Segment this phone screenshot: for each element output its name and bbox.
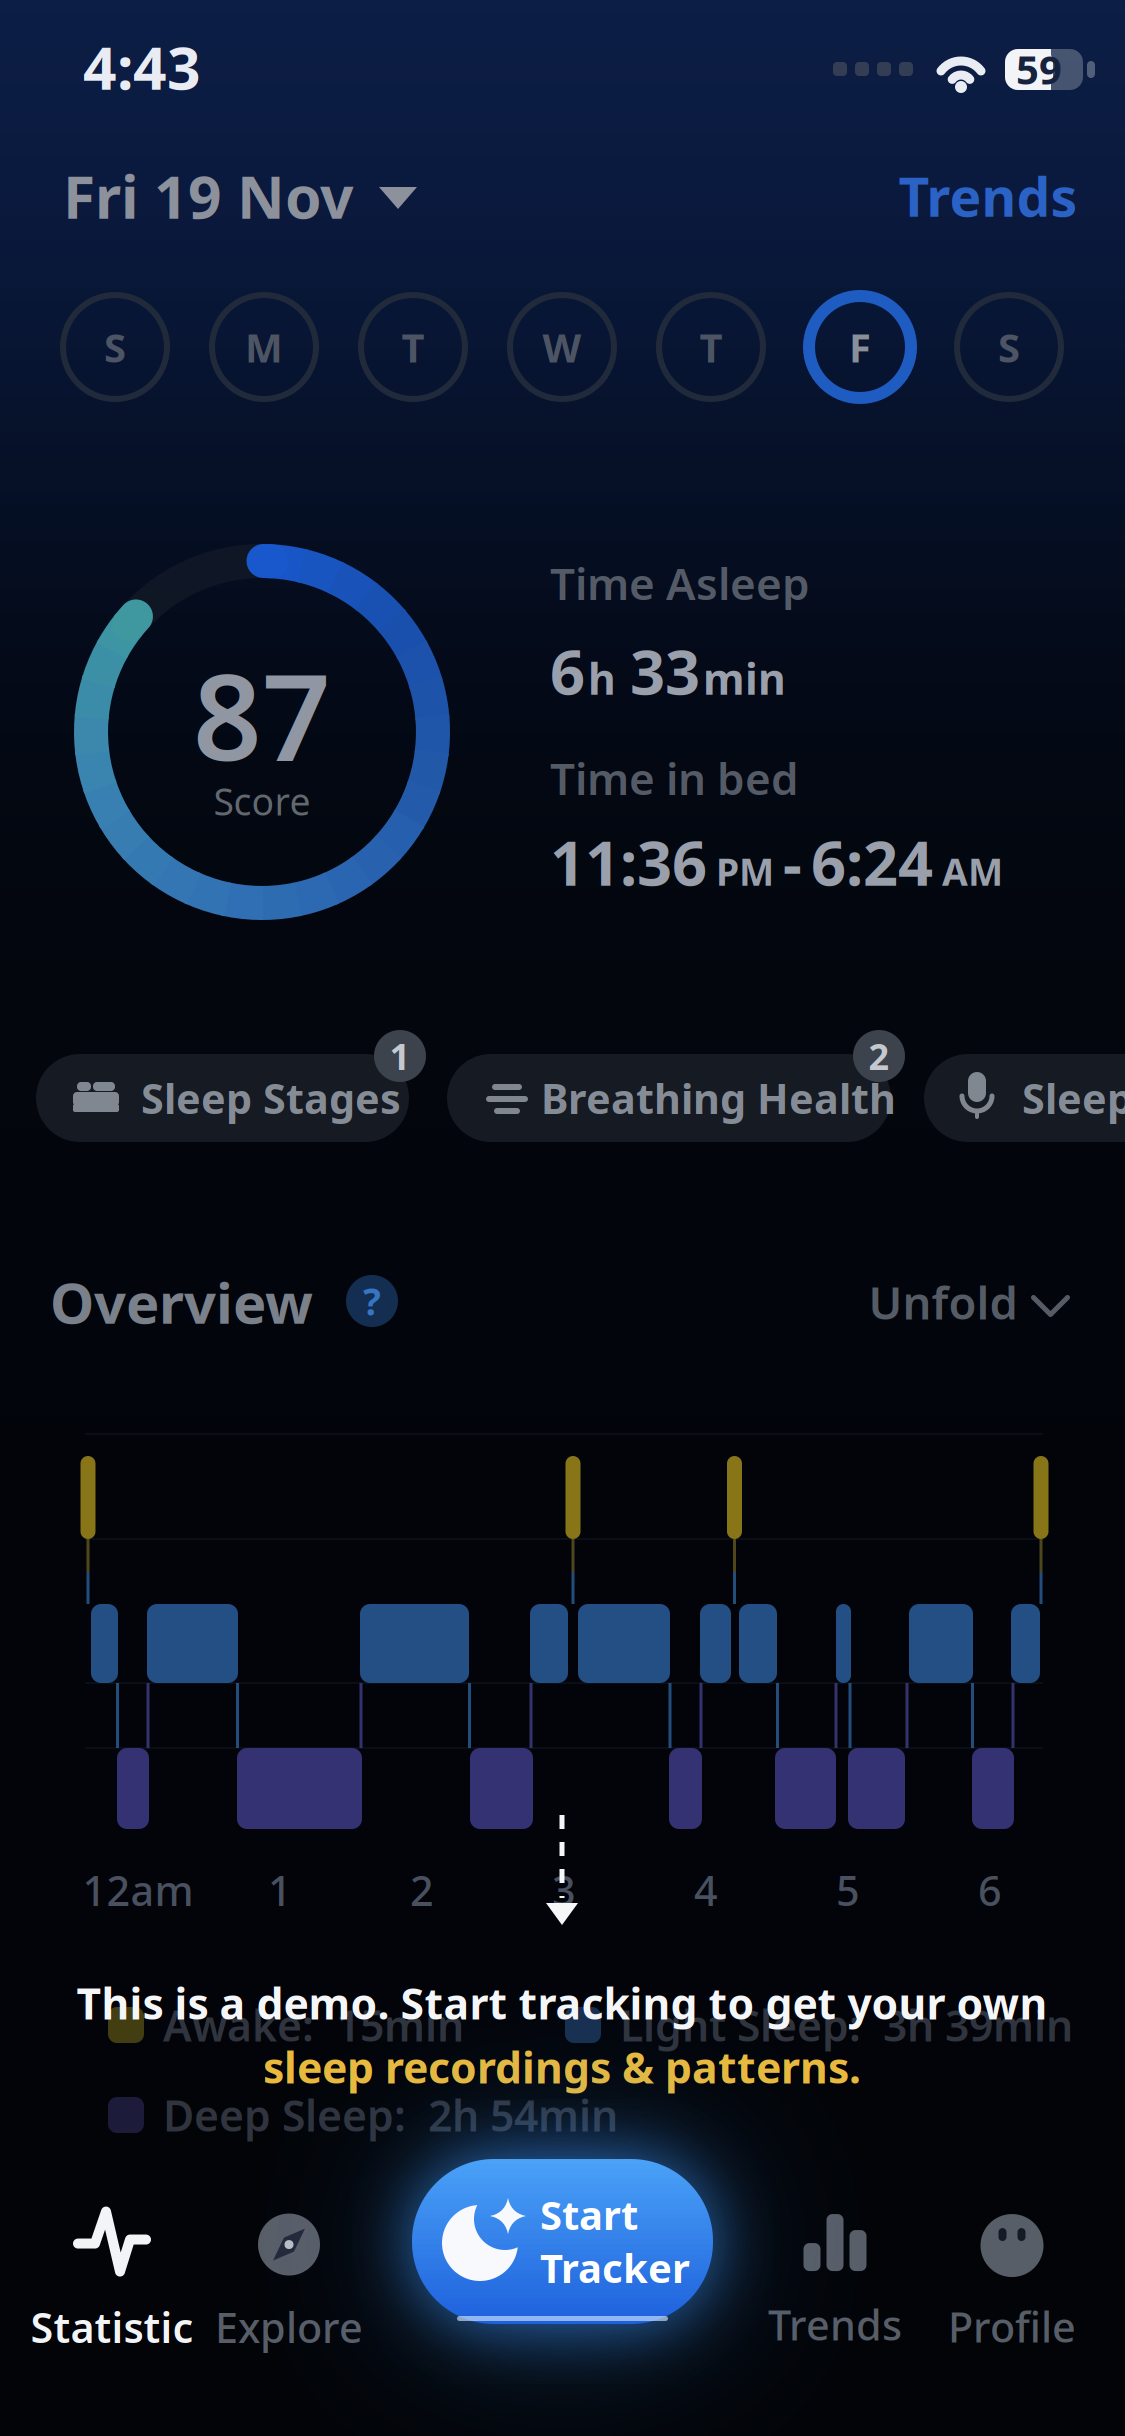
button[interactable]: S	[951, 289, 1067, 405]
staticText: min	[703, 650, 786, 707]
staticText: 2	[410, 1863, 434, 1917]
staticText: 6	[978, 1863, 1002, 1917]
staticText: sleep recordings & patterns.	[263, 2039, 861, 2095]
button[interactable]: T	[653, 289, 769, 405]
staticText: Awake: 15min	[163, 1997, 464, 2053]
button[interactable]: W	[504, 289, 620, 405]
staticText: 1	[389, 1032, 410, 1080]
staticText: F	[849, 320, 871, 373]
staticText: Overview	[50, 1265, 313, 1339]
staticText: This is a demo. Start tracking to get yo…	[76, 1975, 1047, 2031]
staticText: 11:36	[550, 821, 707, 903]
staticText: ?	[363, 1276, 381, 1326]
button[interactable]	[447, 1054, 891, 1142]
staticText: 59	[1016, 42, 1062, 95]
button[interactable]: Unfold	[868, 1272, 1067, 1332]
staticText: Sleep Stages	[141, 1071, 401, 1125]
staticText: S	[104, 320, 126, 373]
staticText: W	[542, 320, 581, 373]
staticText: Time Asleep	[550, 554, 810, 612]
staticText: Start	[540, 2188, 638, 2241]
staticText: Time in bed	[550, 749, 799, 807]
staticText: Profile	[948, 2299, 1076, 2354]
button[interactable]: Trends	[768, 2214, 902, 2352]
staticText: Score	[213, 776, 310, 826]
button[interactable]	[924, 1054, 1125, 1142]
button[interactable]: Profile	[948, 2214, 1076, 2354]
staticText: Breathing Health	[541, 1071, 896, 1125]
staticText: Sleep	[1022, 1071, 1125, 1125]
staticText: 3	[552, 1863, 576, 1917]
staticText: Deep Sleep: 2h 54min	[163, 2087, 618, 2143]
button[interactable]: Fri 19 Nov	[63, 157, 623, 235]
button[interactable]: S	[57, 289, 173, 405]
staticText: 1	[268, 1863, 292, 1917]
staticText: 4:43	[83, 28, 201, 106]
button[interactable]: M	[206, 289, 322, 405]
staticText: 4	[694, 1863, 718, 1917]
staticText: 6	[550, 630, 585, 712]
button[interactable]	[36, 1054, 409, 1142]
button[interactable]: ?	[346, 1275, 398, 1327]
staticText: AM	[942, 846, 1003, 896]
staticText: 87	[193, 634, 331, 794]
button[interactable]: T	[355, 289, 471, 405]
staticText: Explore	[215, 2300, 363, 2354]
staticText: PM	[716, 846, 774, 896]
staticText: h	[588, 650, 627, 707]
staticText: Fri 19 Nov	[63, 157, 353, 235]
button[interactable]: Explore	[215, 2214, 363, 2354]
button[interactable]: F	[802, 289, 918, 405]
staticText: Statistic	[30, 2300, 193, 2354]
staticText: T	[401, 320, 424, 373]
staticText: 2	[868, 1032, 889, 1080]
staticText: 33	[630, 630, 700, 712]
button[interactable]: Statistic	[30, 2210, 193, 2354]
button[interactable]: Trends	[898, 161, 1077, 231]
staticText: S	[998, 320, 1020, 373]
staticText: Trends	[898, 161, 1077, 231]
staticText: -	[783, 824, 802, 902]
staticText: M	[245, 320, 283, 373]
staticText: 12am	[82, 1863, 193, 1917]
staticText: T	[699, 320, 722, 373]
staticText: Tracker	[540, 2241, 690, 2294]
button[interactable]: Start	[412, 2159, 713, 2324]
staticText: Light Sleep: 3h 39min	[620, 1997, 1073, 2053]
staticText: 6:24	[811, 821, 933, 903]
staticText: Unfold	[868, 1272, 1017, 1332]
staticText: Trends	[768, 2297, 902, 2352]
staticText: 5	[836, 1863, 860, 1917]
